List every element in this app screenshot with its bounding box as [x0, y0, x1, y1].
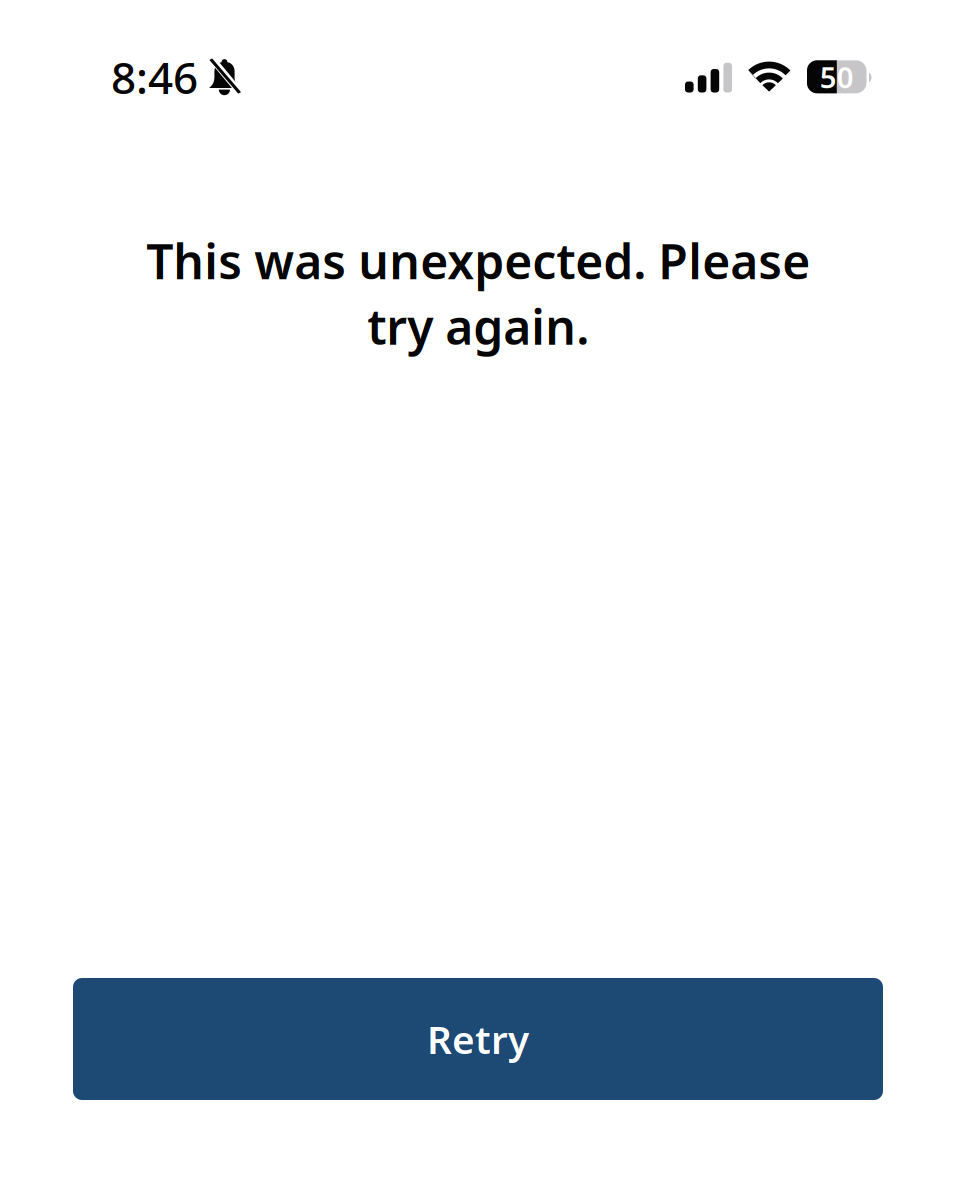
staticText: 50 [820, 57, 854, 97]
staticText: This was unexpected. Please try again. [146, 228, 810, 359]
button[interactable]: Retry [73, 978, 883, 1100]
staticText: 8:46 [111, 47, 198, 107]
staticText: Retry [427, 1013, 529, 1065]
